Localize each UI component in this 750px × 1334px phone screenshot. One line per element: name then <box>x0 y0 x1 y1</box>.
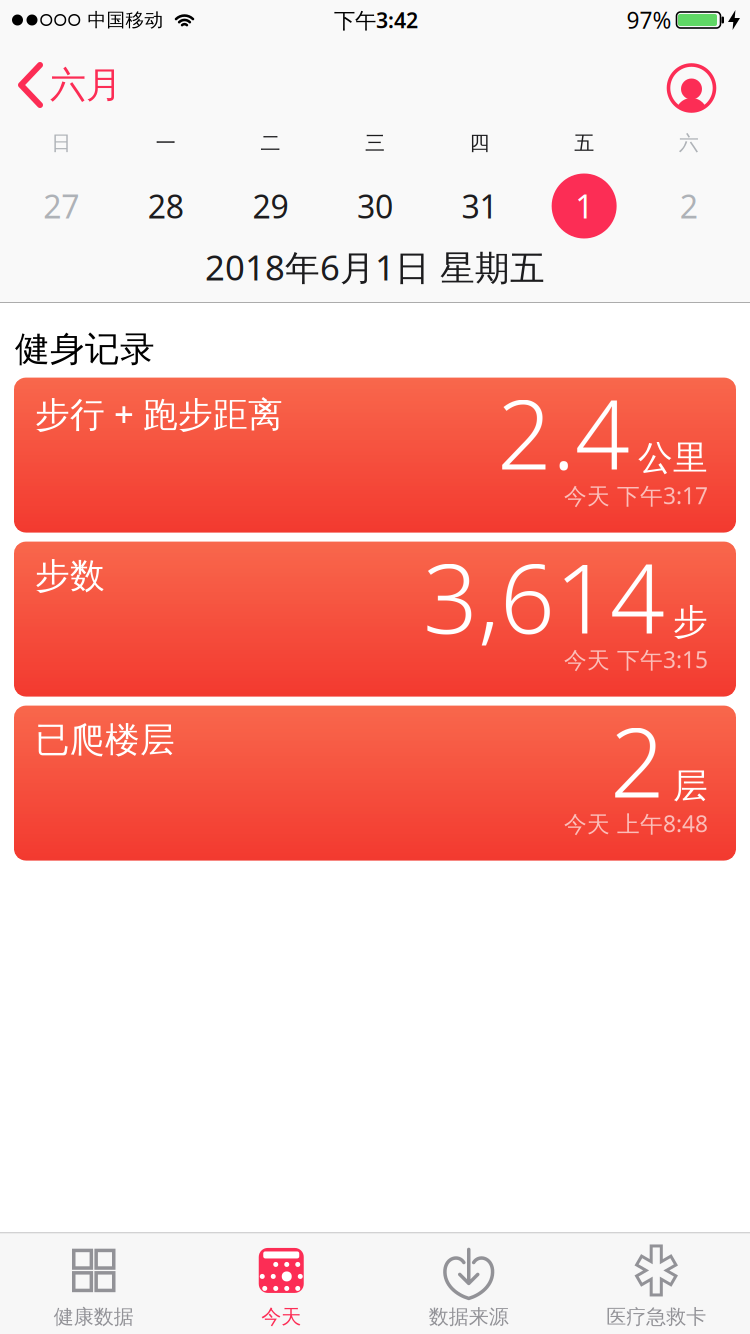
staticText: 中国移动 <box>87 8 163 31</box>
staticText: 医疗急救卡 <box>606 1304 706 1329</box>
staticText: 六 <box>679 131 699 155</box>
staticText: 3,614 <box>423 533 665 660</box>
staticText: 29 <box>252 185 288 227</box>
staticText: 今天 <box>261 1304 301 1329</box>
staticText: 步行 + 跑步距离 <box>35 391 283 437</box>
button[interactable]: 今天 <box>187 1245 375 1329</box>
staticText: 四 <box>470 131 490 155</box>
staticText: 六月 <box>50 63 122 107</box>
staticText: 2 <box>680 185 698 227</box>
staticText: 下午3:42 <box>334 6 418 34</box>
staticText: 2.4 <box>497 369 630 496</box>
button[interactable]: 29 <box>218 168 323 244</box>
staticText: 1 <box>575 185 593 227</box>
staticText: 今天 下午3:15 <box>564 644 708 675</box>
staticText: 健康数据 <box>54 1304 134 1329</box>
button[interactable]: 健康数据 <box>0 1245 187 1329</box>
staticText: 三 <box>365 131 385 155</box>
staticText: 97% <box>626 5 671 35</box>
staticText: 数据来源 <box>429 1304 509 1329</box>
button[interactable]: 30 <box>323 168 427 244</box>
button[interactable]: 已爬楼层 <box>14 706 736 861</box>
button[interactable]: 31 <box>427 168 532 244</box>
staticText: 日 <box>51 131 71 155</box>
staticText: 31 <box>462 185 498 227</box>
staticText: 五 <box>574 131 594 155</box>
button[interactable]: 27 <box>9 168 114 244</box>
staticText: 一 <box>156 131 176 155</box>
button[interactable]: 1 <box>532 168 636 244</box>
staticText: 27 <box>43 185 79 227</box>
staticText: 今天 下午3:17 <box>564 480 708 511</box>
staticText: 2 <box>610 697 665 824</box>
staticText: 2018年6月1日 星期五 <box>205 244 545 290</box>
staticText: 步数 <box>35 555 105 597</box>
button[interactable]: 六月 <box>21 63 122 107</box>
staticText: 28 <box>148 185 184 227</box>
button[interactable]: 医疗急救卡 <box>562 1245 750 1329</box>
button[interactable]: 28 <box>114 168 218 244</box>
button[interactable]: 步数 <box>14 542 736 697</box>
button[interactable]: 个人资料 <box>668 64 715 111</box>
staticText: 层 <box>673 765 708 807</box>
staticText: 步 <box>673 601 708 643</box>
button[interactable]: 数据来源 <box>375 1245 562 1329</box>
staticText: 已爬楼层 <box>35 719 175 761</box>
button[interactable]: 步行 + 跑步距离 <box>14 378 736 533</box>
staticText: 今天 上午8:48 <box>564 808 708 839</box>
staticText: 健身记录 <box>15 328 155 371</box>
staticText: 公里 <box>638 437 708 479</box>
staticText: 30 <box>357 185 393 227</box>
button[interactable]: 2 <box>636 168 741 244</box>
staticText: 二 <box>260 131 280 155</box>
